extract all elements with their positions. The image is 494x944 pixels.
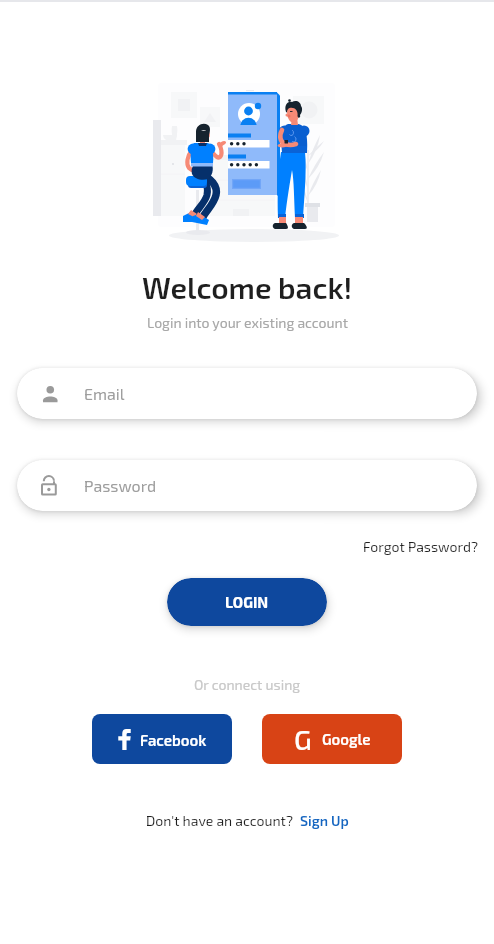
button[interactable]: Password [17, 460, 477, 511]
button[interactable]: LOGIN [167, 578, 327, 626]
staticText: LOGIN [225, 593, 269, 611]
staticText: Or connect using [194, 676, 301, 693]
button[interactable]: G [262, 714, 402, 764]
staticText: Welcome back! [142, 269, 353, 305]
staticText: Don't have an account? [146, 812, 293, 829]
staticText: Google [322, 730, 371, 748]
staticText: G [294, 722, 312, 756]
staticText: Password [84, 476, 157, 495]
button[interactable]: Sign Up [300, 812, 349, 829]
staticText: Email [84, 384, 125, 403]
staticText: Facebook [140, 731, 207, 749]
button[interactable]: Email [17, 368, 477, 419]
button[interactable]: Forgot Password? [361, 536, 481, 557]
staticText: Login into your existing account [147, 314, 348, 331]
button[interactable]: Facebook [92, 714, 232, 764]
